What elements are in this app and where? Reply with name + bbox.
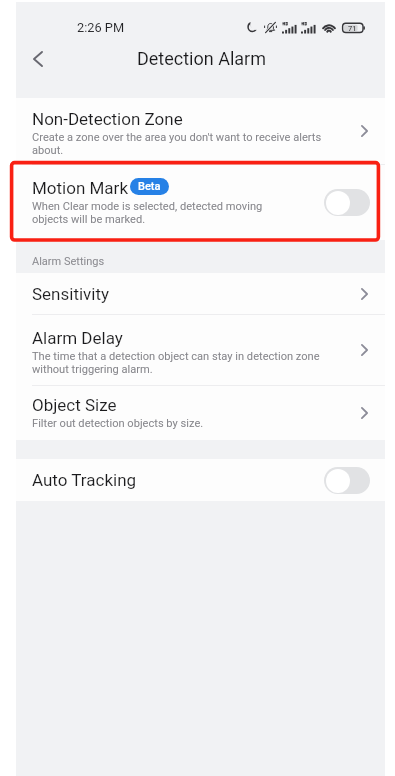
button[interactable]: Object Size [16,386,385,440]
staticText: The time that a detection object can sta… [32,349,332,375]
staticText: Detection Alarm [137,48,266,69]
staticText: Non-Detection Zone [32,109,183,129]
button[interactable]: Alarm Delay [16,315,385,385]
button[interactable]: Toggle [324,189,370,216]
staticText: Object Size [32,395,117,415]
staticText: Motion Mark [32,178,128,198]
staticText: Filter out detection objects by size. [32,416,332,429]
staticText: Alarm Delay [32,328,123,348]
staticText: 71 [348,24,357,33]
button[interactable]: Non-Detection Zone [16,98,385,164]
button[interactable]: Sensitivity [16,273,385,314]
button[interactable]: Motion Mark [16,165,385,240]
staticText: Create a zone over the area you don't wa… [32,130,332,156]
staticText: Alarm Settings [32,255,105,268]
button[interactable]: Toggle [324,467,370,494]
staticText: 2:26 PM [77,20,125,35]
staticText: Auto Tracking [32,470,137,490]
button[interactable]: Auto Tracking [16,459,385,501]
staticText: Sensitivity [32,284,110,304]
staticText: Beta [138,180,161,193]
staticText: When Clear mode is selected, detected mo… [32,199,300,225]
button[interactable]: Back [16,37,60,81]
